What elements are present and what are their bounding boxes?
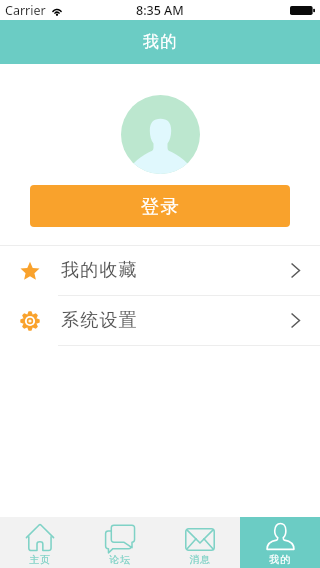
staticText: Carrier <box>5 2 46 19</box>
staticText: 消息 <box>189 553 211 566</box>
button[interactable]: 主页 <box>0 517 80 568</box>
staticText: 我的 <box>269 553 291 566</box>
staticText: 我的收藏 <box>61 259 138 282</box>
staticText: 登录 <box>140 195 180 218</box>
button[interactable]: 我的收藏 <box>0 246 320 295</box>
staticText: 主页 <box>29 553 51 566</box>
staticText: 8:35 AM <box>136 2 184 19</box>
staticText: 我的 <box>143 32 178 52</box>
staticText: 系统设置 <box>61 309 138 332</box>
button[interactable]: 系统设置 <box>0 296 320 345</box>
button[interactable]: 我的 <box>240 517 320 568</box>
staticText: 论坛 <box>109 553 131 566</box>
button[interactable]: 消息 <box>160 517 240 568</box>
button[interactable]: 登录 <box>30 185 290 227</box>
button[interactable]: 论坛 <box>80 517 160 568</box>
